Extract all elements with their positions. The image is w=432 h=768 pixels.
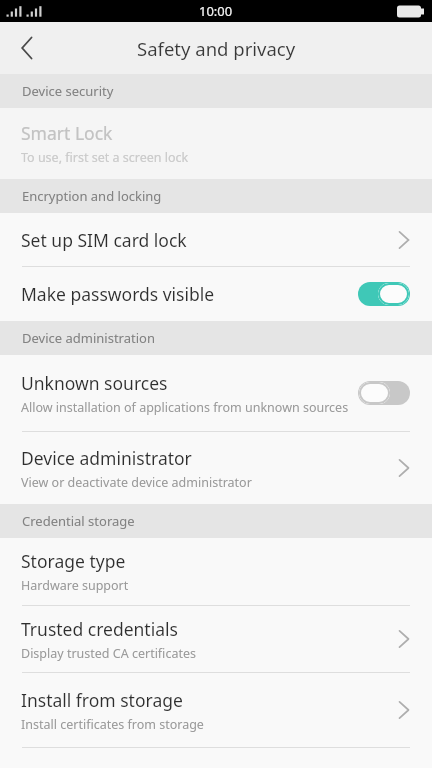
staticText: Smart Lock [21,121,113,145]
staticText: Install certificates from storage [21,716,204,733]
staticText: Trusted credentials [21,617,178,641]
button[interactable]: Make passwords visible [0,267,432,321]
staticText: Credential storage [22,512,135,530]
button[interactable]: Install from storage [0,673,432,747]
button[interactable]: Device administrator [0,432,432,504]
button[interactable]: Smart Lock [0,108,432,179]
button[interactable]: Trusted credentials [0,606,432,672]
button[interactable] [9,30,45,66]
staticText: Encryption and locking [22,187,162,205]
staticText: To use, first set a screen lock [21,149,189,166]
staticText: View or deactivate device administrator [21,474,252,491]
staticText: Set up SIM card lock [21,228,187,252]
staticText: Allow installation of applications from … [21,399,349,416]
staticText: 10:00 [199,2,233,20]
staticText: Device administration [22,329,155,347]
button[interactable]: Unknown sources [0,355,432,431]
staticText: Device administrator [21,446,192,470]
button[interactable]: Storage type [0,538,432,605]
button[interactable] [358,381,410,405]
staticText: Make passwords visible [21,282,215,306]
staticText: Install from storage [21,688,183,712]
staticText: Safety and privacy [137,36,296,61]
staticText: Unknown sources [21,371,168,395]
staticText: Storage type [21,549,126,573]
staticText: Device security [22,82,114,100]
button[interactable] [358,282,410,306]
staticText: Display trusted CA certificates [21,645,196,662]
button[interactable]: Set up SIM card lock [0,213,432,266]
staticText: Hardware support [21,577,129,594]
